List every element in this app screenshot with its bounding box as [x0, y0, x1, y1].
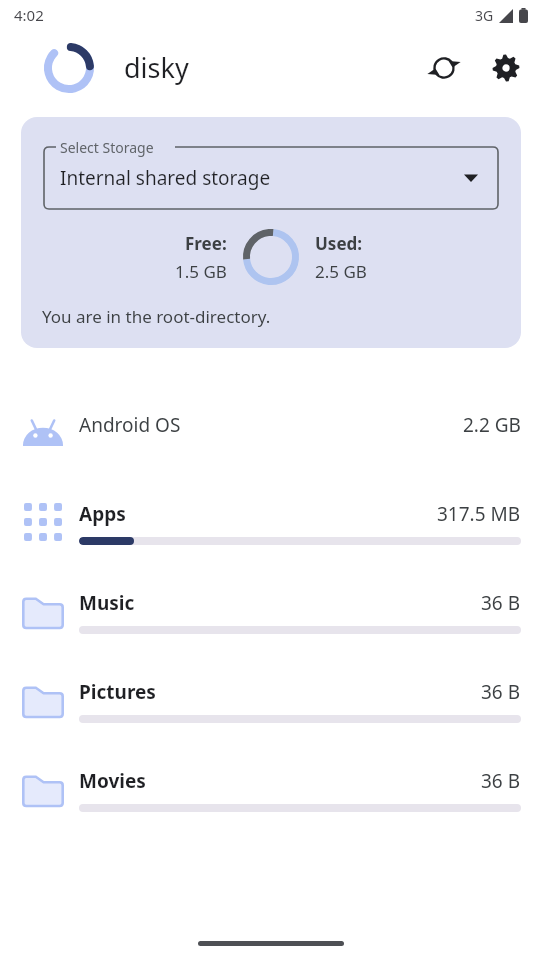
staticText: Music: [79, 590, 135, 616]
staticText: 317.5 MB: [437, 501, 521, 527]
staticText: Apps: [79, 501, 126, 527]
staticText: 1.5 GB: [175, 260, 227, 283]
staticText: Used:: [315, 232, 363, 255]
staticText: Free:: [185, 232, 227, 255]
button[interactable]: Refresh: [420, 44, 468, 92]
button[interactable]: Android OS: [0, 394, 542, 483]
staticText: You are in the root-directory.: [42, 305, 271, 328]
button[interactable]: Select Storage: [21, 117, 521, 348]
staticText: 36 B: [481, 679, 521, 705]
staticText: Internal shared storage: [60, 165, 271, 191]
button[interactable]: Select Storage: [42, 139, 500, 209]
button[interactable]: Music: [0, 572, 542, 661]
staticText: 2.2 GB: [463, 412, 521, 438]
button[interactable]: Movies: [0, 750, 542, 839]
staticText: Android OS: [79, 412, 181, 438]
staticText: 36 B: [481, 590, 521, 616]
staticText: 36 B: [481, 768, 521, 794]
button[interactable]: Pictures: [0, 661, 542, 750]
button[interactable]: Apps: [0, 483, 542, 572]
staticText: 2.5 GB: [315, 260, 367, 283]
staticText: Select Storage: [60, 138, 154, 157]
staticText: Movies: [79, 768, 146, 794]
staticText: Pictures: [79, 679, 156, 705]
staticText: 4:02: [14, 5, 44, 25]
button[interactable]: Settings: [482, 44, 530, 92]
staticText: 3G: [475, 6, 494, 25]
staticText: disky: [124, 49, 189, 86]
